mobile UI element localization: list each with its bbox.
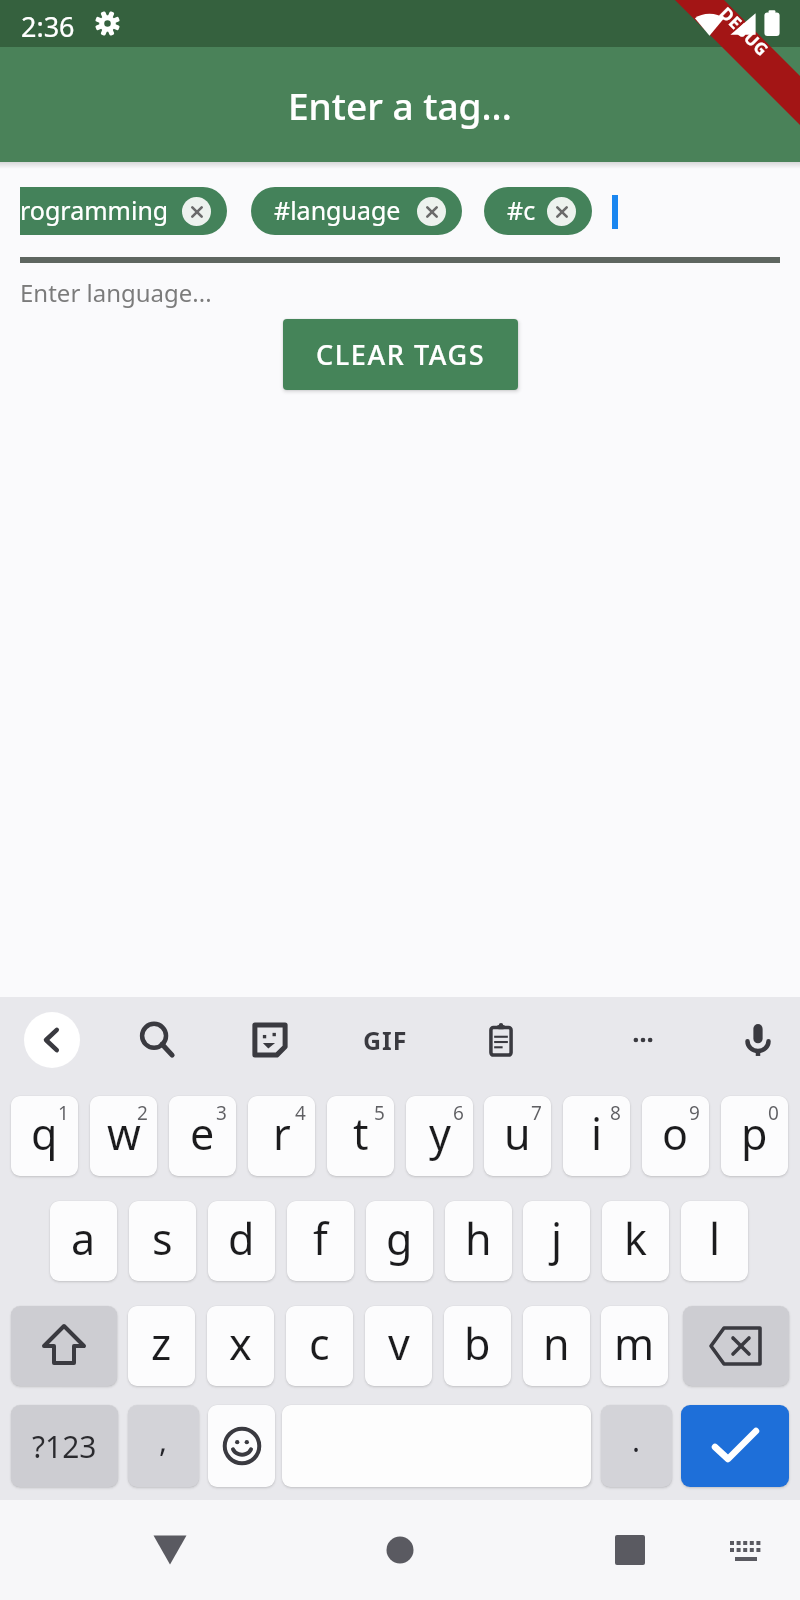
staticText: z: [151, 1314, 172, 1373]
button[interactable]: x: [207, 1306, 274, 1386]
staticText: DEBUG: [715, 2, 774, 61]
staticText: #language: [274, 193, 401, 227]
staticText: ,: [159, 1420, 168, 1461]
staticText: v: [388, 1314, 410, 1373]
button[interactable]: i: [563, 1096, 630, 1176]
button[interactable]: s: [129, 1201, 196, 1281]
button[interactable]: c: [286, 1306, 353, 1386]
staticText: k: [624, 1209, 647, 1268]
staticText: d: [228, 1209, 255, 1268]
button[interactable]: j: [523, 1201, 590, 1281]
staticText: b: [464, 1314, 491, 1373]
button[interactable]: a: [50, 1201, 117, 1281]
staticText: 8: [610, 1100, 621, 1126]
button[interactable]: y: [406, 1096, 473, 1176]
button[interactable]: Back: [130, 1510, 210, 1590]
button[interactable]: Home: [360, 1510, 440, 1590]
button[interactable]: u: [484, 1096, 551, 1176]
button[interactable]: n: [523, 1306, 590, 1386]
staticText: y: [429, 1104, 451, 1163]
button[interactable]: v: [365, 1306, 432, 1386]
button[interactable]: #language: [251, 187, 462, 235]
button[interactable]: GIF: [355, 1010, 415, 1070]
button[interactable]: CLEAR TAGS: [283, 319, 518, 390]
button[interactable]: Shift: [11, 1306, 117, 1386]
button[interactable]: Backspace: [683, 1306, 789, 1386]
button[interactable]: g: [366, 1201, 433, 1281]
staticText: a: [71, 1209, 96, 1268]
button[interactable]: e: [169, 1096, 236, 1176]
staticText: p: [741, 1104, 768, 1163]
button[interactable]: w: [90, 1096, 157, 1176]
button[interactable]: More: [613, 1010, 673, 1070]
staticText: w: [107, 1104, 141, 1163]
button[interactable]: p: [721, 1096, 788, 1176]
staticText: Enter a tag...: [288, 80, 512, 130]
button[interactable]: r: [248, 1096, 315, 1176]
button[interactable]: Recents: [590, 1510, 670, 1590]
button[interactable]: #c: [484, 187, 592, 235]
button[interactable]: rogramming: [20, 187, 227, 235]
staticText: f: [313, 1209, 328, 1268]
button[interactable]: ?123: [11, 1405, 118, 1487]
staticText: rogramming: [20, 193, 169, 227]
staticText: q: [31, 1104, 58, 1163]
staticText: n: [543, 1314, 570, 1373]
button[interactable]: Emoji: [208, 1405, 275, 1487]
button[interactable]: Back: [24, 1012, 80, 1068]
button[interactable]: Enter: [681, 1405, 789, 1487]
staticText: CLEAR TAGS: [316, 336, 486, 373]
staticText: e: [190, 1104, 215, 1163]
staticText: t: [353, 1104, 369, 1163]
button[interactable]: Voice input: [728, 1010, 788, 1070]
button[interactable]: h: [445, 1201, 512, 1281]
button[interactable]: b: [444, 1306, 511, 1386]
staticText: j: [551, 1209, 563, 1268]
staticText: h: [465, 1209, 492, 1268]
staticText: 7: [531, 1100, 542, 1126]
staticText: 2:36: [21, 8, 75, 45]
staticText: u: [504, 1104, 531, 1163]
button[interactable]: Switch keyboard: [706, 1510, 786, 1590]
staticText: 2: [137, 1100, 148, 1126]
button[interactable]: d: [208, 1201, 275, 1281]
button[interactable]: z: [128, 1306, 195, 1386]
button[interactable]: Search: [127, 1010, 187, 1070]
staticText: i: [591, 1104, 603, 1163]
staticText: 5: [374, 1100, 385, 1126]
staticText: o: [662, 1104, 689, 1163]
staticText: 0: [768, 1100, 779, 1126]
staticText: 3: [216, 1100, 227, 1126]
staticText: Enter language...: [20, 276, 212, 309]
button[interactable]: .: [601, 1405, 672, 1487]
button[interactable]: q: [11, 1096, 78, 1176]
staticText: GIF: [363, 1023, 408, 1057]
button[interactable]: f: [287, 1201, 354, 1281]
staticText: 4: [295, 1100, 306, 1126]
staticText: ?123: [32, 1426, 97, 1467]
staticText: r: [273, 1104, 291, 1163]
button[interactable]: Clipboard: [471, 1010, 531, 1070]
button[interactable]: m: [601, 1306, 668, 1386]
staticText: 9: [689, 1100, 700, 1126]
staticText: 1: [58, 1100, 69, 1126]
button[interactable]: k: [602, 1201, 669, 1281]
button[interactable]: Stickers: [240, 1010, 300, 1070]
staticText: c: [309, 1314, 330, 1373]
staticText: m: [614, 1314, 655, 1373]
staticText: #c: [507, 193, 536, 227]
staticText: s: [152, 1209, 173, 1268]
button[interactable]: t: [327, 1096, 394, 1176]
staticText: l: [709, 1209, 721, 1268]
button[interactable]: ,: [128, 1405, 199, 1487]
staticText: 6: [453, 1100, 464, 1126]
staticText: .: [632, 1420, 641, 1461]
button[interactable]: l: [681, 1201, 748, 1281]
staticText: x: [229, 1314, 252, 1373]
staticText: g: [386, 1209, 413, 1268]
button[interactable]: o: [642, 1096, 709, 1176]
